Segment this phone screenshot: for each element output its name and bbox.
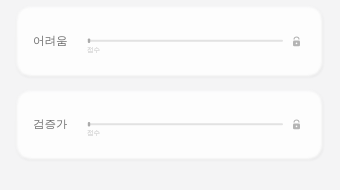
staticText: 점수	[87, 46, 100, 54]
button[interactable]: 어려움	[17, 7, 322, 76]
button[interactable]: 검증가	[17, 91, 322, 159]
staticText: 어려움	[33, 34, 68, 48]
button[interactable]: Locked	[287, 115, 305, 133]
staticText: 점수	[87, 129, 100, 137]
staticText: 검증가	[33, 117, 68, 131]
button[interactable]: Locked	[287, 32, 305, 50]
